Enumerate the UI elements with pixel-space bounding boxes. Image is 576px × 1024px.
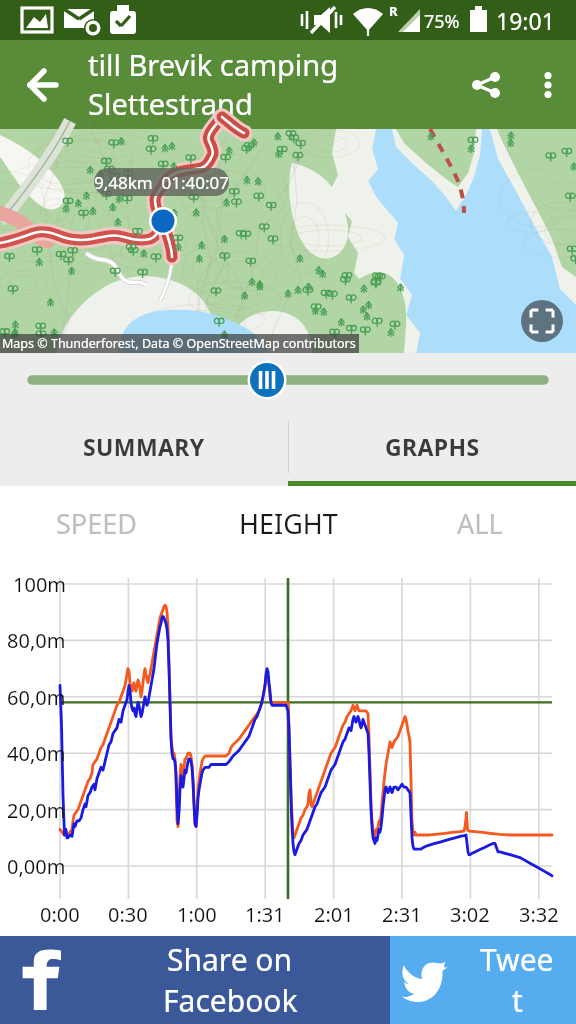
staticText: Twee — [480, 939, 554, 980]
staticText: till Brevik camping — [88, 45, 339, 84]
staticText: 0,00m — [7, 853, 66, 880]
staticText: 3:02 — [450, 901, 490, 928]
button[interactable]: ALL — [384, 486, 576, 560]
button[interactable]: Back — [0, 40, 86, 129]
staticText: R — [389, 2, 398, 20]
staticText: SPEED — [56, 505, 137, 542]
staticText: t — [512, 980, 523, 1021]
staticText: 0:00 — [40, 901, 80, 928]
staticText: 20,0m — [7, 797, 66, 824]
button[interactable]: SUMMARY — [0, 407, 288, 486]
staticText: 2:01 — [314, 901, 354, 928]
staticText: 1:31 — [245, 901, 285, 928]
staticText: Maps © Thunderforest, Data © OpenStreetM… — [2, 335, 356, 352]
staticText: 9,48km 01:40:07 — [94, 171, 229, 194]
staticText: GRAPHS — [385, 431, 480, 462]
staticText: 40,0m — [7, 740, 66, 767]
button[interactable]: Twee — [390, 936, 576, 1024]
staticText: 3:32 — [519, 901, 559, 928]
staticText: HEIGHT — [239, 505, 338, 542]
staticText: Facebook — [163, 980, 298, 1021]
staticText: 100m — [13, 571, 67, 598]
staticText: SUMMARY — [83, 431, 205, 462]
staticText: 60,0m — [7, 684, 66, 711]
staticText: 0:30 — [108, 901, 148, 928]
staticText: 1:00 — [177, 901, 217, 928]
button[interactable]: More options — [520, 40, 576, 129]
button[interactable]: SPEED — [0, 486, 192, 560]
button[interactable]: Share on — [0, 936, 390, 1024]
button[interactable]: HEIGHT — [192, 486, 384, 560]
staticText: Share on — [167, 939, 293, 980]
staticText: 2:31 — [382, 901, 422, 928]
staticText: ALL — [457, 505, 503, 542]
staticText: 19:01 — [496, 5, 555, 36]
button[interactable] — [0, 353, 576, 407]
button[interactable]: Fullscreen — [521, 300, 563, 342]
staticText: 75% — [424, 9, 460, 34]
button[interactable]: Share — [452, 40, 520, 129]
staticText: 80,0m — [7, 627, 66, 654]
staticText: Slettestrand — [88, 84, 253, 123]
button[interactable]: GRAPHS — [288, 407, 576, 486]
